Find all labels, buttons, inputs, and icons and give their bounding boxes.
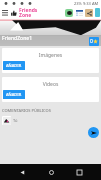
staticText: Tú <box>13 118 18 123</box>
staticText: AÑADIR <box>6 63 22 68</box>
staticText: 0 <box>90 38 93 45</box>
button[interactable]: Recents <box>72 165 86 179</box>
button[interactable]: AÑADIR <box>3 61 25 70</box>
staticText: FriendZone1 <box>2 35 33 42</box>
staticText: Friends Zone <box>19 7 38 18</box>
staticText: Videos <box>2 81 99 88</box>
button[interactable]: Back <box>15 165 29 179</box>
button[interactable]: Home <box>44 165 58 179</box>
button[interactable]: AÑADIR <box>3 90 25 99</box>
button[interactable]: Menu <box>0 8 9 17</box>
button[interactable]: Send <box>88 127 99 138</box>
staticText: Imágenes <box>2 52 99 59</box>
staticText: COMENTARIOS PÚBLICOS <box>2 108 51 113</box>
staticText: 23% 9:33 AM <box>74 1 99 6</box>
staticText: AÑADIR <box>6 92 22 97</box>
button[interactable]: 0 <box>90 38 98 45</box>
